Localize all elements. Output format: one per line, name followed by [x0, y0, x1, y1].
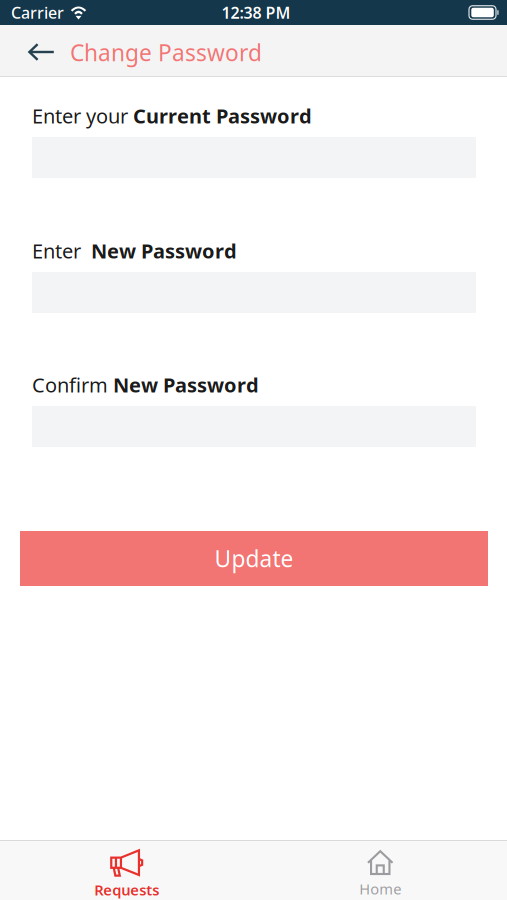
staticText: 12:38 PM: [221, 2, 290, 23]
staticText: Change Password: [70, 37, 262, 67]
staticText: Confirm: [32, 371, 113, 398]
button[interactable]: Home: [253, 841, 507, 900]
button[interactable]: Back: [0, 25, 70, 76]
staticText: Home: [359, 879, 401, 898]
staticText: New Password: [91, 237, 237, 264]
staticText: Carrier: [11, 2, 64, 23]
button[interactable]: Requests: [0, 841, 253, 900]
staticText: Enter your: [32, 102, 133, 129]
staticText: Current Password: [133, 102, 312, 129]
button[interactable]: Update: [20, 531, 488, 586]
staticText: New Password: [113, 371, 259, 398]
button[interactable]: Change Password: [70, 25, 262, 76]
staticText: Requests: [94, 880, 159, 899]
staticText: Enter: [32, 237, 91, 264]
staticText: Update: [214, 543, 293, 573]
